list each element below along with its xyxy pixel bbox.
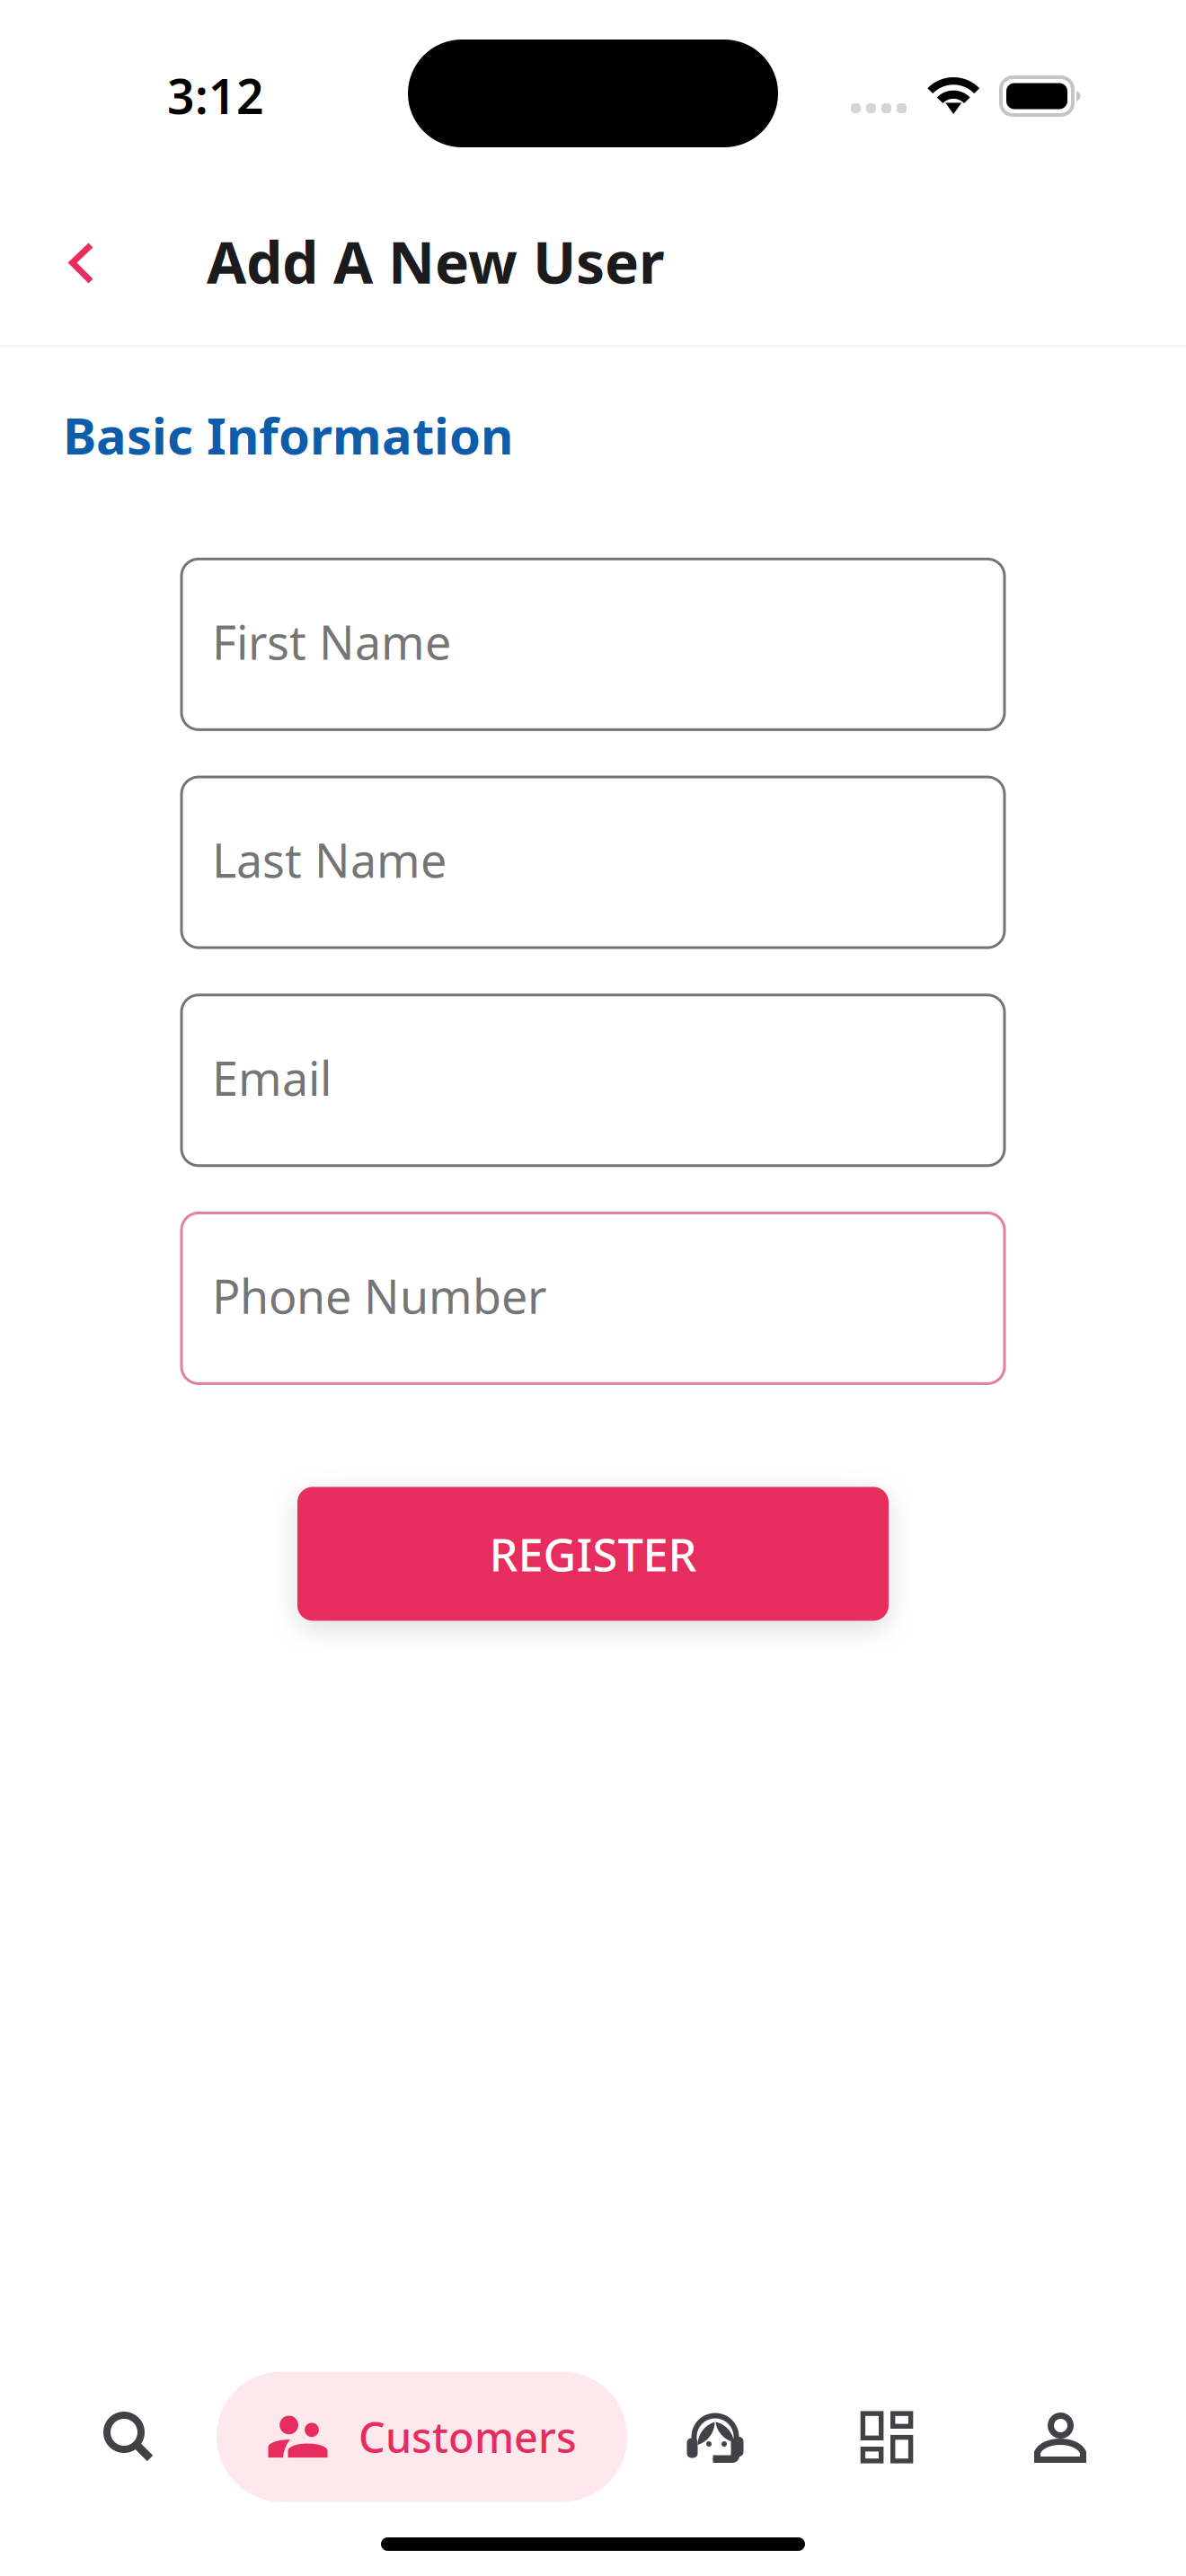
staticText: First Name [212, 611, 451, 673]
button[interactable]: Last Name [181, 777, 1005, 948]
button[interactable]: REGISTER [297, 1487, 889, 1621]
staticText: Add A New User [207, 223, 665, 300]
button[interactable]: Profile [1004, 2372, 1117, 2502]
staticText: Phone Number [212, 1265, 546, 1327]
staticText: Email [212, 1047, 332, 1109]
button[interactable]: Search [72, 2372, 185, 2502]
staticText: Basic Information [63, 401, 513, 468]
button[interactable]: Back [30, 214, 128, 313]
staticText: REGISTER [489, 1524, 697, 1584]
staticText: Last Name [212, 829, 447, 891]
button[interactable]: Phone Number [181, 1213, 1005, 1384]
button[interactable]: Email [181, 995, 1005, 1166]
staticText: Customers [358, 2409, 577, 2465]
button[interactable]: Dashboard [830, 2371, 943, 2502]
button[interactable]: Customers [217, 2372, 627, 2502]
button[interactable]: First Name [181, 559, 1005, 730]
button[interactable]: Support [659, 2372, 772, 2502]
staticText: 3:12 [167, 64, 264, 127]
